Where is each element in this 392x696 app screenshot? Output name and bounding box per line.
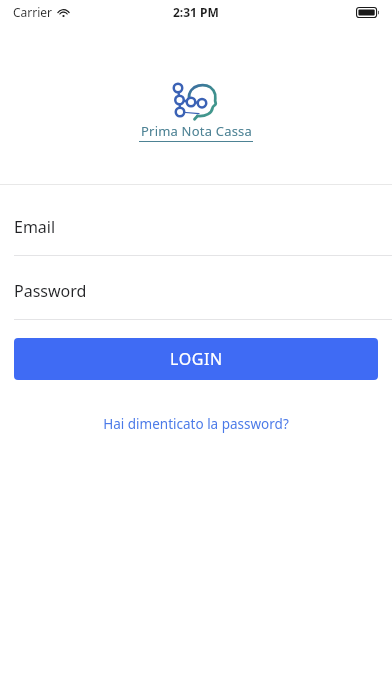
staticText: Carrier [13, 4, 53, 20]
staticText: 2:31 PM [173, 4, 219, 20]
button[interactable]: Hai dimenticato la password? [0, 415, 392, 433]
staticText: Email [14, 216, 56, 238]
staticText: Hai dimenticato la password? [103, 415, 289, 433]
button[interactable]: LOGIN [14, 338, 378, 380]
button[interactable]: Email [0, 214, 392, 240]
button[interactable]: Password [0, 278, 392, 304]
staticText: Password [14, 280, 87, 302]
staticText: Prima Nota Cassa [141, 122, 252, 140]
staticText: LOGIN [170, 348, 223, 370]
